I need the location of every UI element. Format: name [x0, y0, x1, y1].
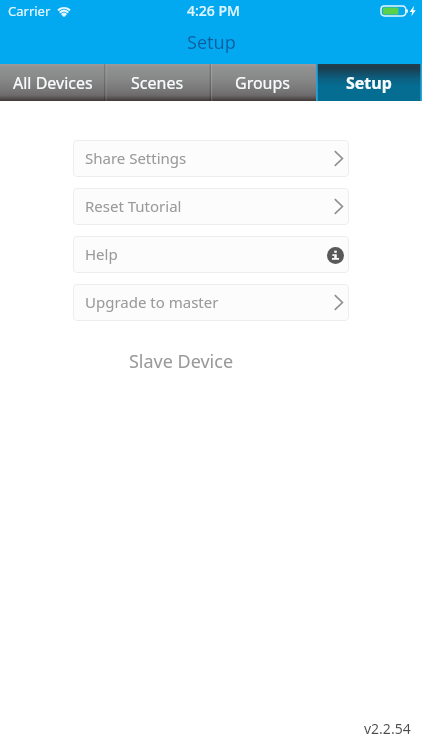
button[interactable]: Scenes — [105, 64, 210, 101]
staticText: Setup — [346, 72, 392, 94]
button[interactable]: All Devices — [0, 64, 105, 101]
button[interactable]: Groups — [210, 64, 316, 101]
staticText: Reset Tutorial — [85, 196, 182, 216]
button[interactable]: Help — [73, 236, 349, 273]
other: Reset Tutorial — [333, 198, 344, 215]
staticText: Setup — [187, 30, 236, 55]
other: Upgrade to master — [333, 294, 344, 311]
other: Share Settings — [333, 150, 344, 167]
staticText: v2.2.54 — [364, 719, 411, 738]
staticText: Scenes — [131, 72, 184, 94]
staticText: Groups — [235, 72, 291, 94]
staticText: Upgrade to master — [85, 292, 219, 312]
staticText: All Devices — [13, 72, 93, 94]
button[interactable]: Reset Tutorial — [73, 188, 349, 225]
other: Wi-Fi — [56, 6, 72, 17]
staticText: 4:26 PM — [187, 1, 240, 20]
other: Info — [327, 247, 344, 264]
staticText: Carrier — [8, 2, 51, 20]
other: Battery charging — [381, 4, 417, 18]
button[interactable]: Upgrade to master — [73, 284, 349, 321]
button[interactable]: Share Settings — [73, 140, 349, 177]
staticText: Help — [85, 244, 118, 264]
button[interactable]: Setup — [316, 64, 422, 101]
staticText: Share Settings — [85, 148, 187, 168]
staticText: Slave Device — [0, 349, 362, 374]
